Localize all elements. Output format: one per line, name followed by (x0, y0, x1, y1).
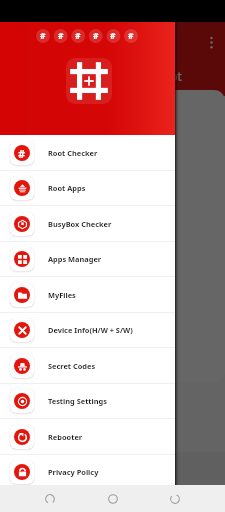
button[interactable]: More options (206, 33, 217, 44)
button[interactable]: Root Apps (0, 171, 175, 205)
staticText: # (18, 146, 26, 161)
button[interactable]: Privacy Policy (0, 455, 175, 489)
staticText: MyFiles (48, 290, 76, 300)
staticText: # (128, 30, 134, 42)
button[interactable]: Recents (163, 487, 187, 511)
staticText: Root Apps (48, 183, 86, 193)
staticText: Root Checker (48, 148, 98, 158)
button[interactable]: Testing Settings (0, 384, 175, 418)
staticText: # (40, 30, 46, 42)
staticText: Testing Settings (48, 396, 107, 406)
staticText: Device Info(H/W + S/W) (48, 325, 133, 335)
staticText: Secret Codes (48, 361, 96, 371)
staticText: # (110, 30, 116, 42)
button[interactable]: Back (38, 487, 62, 511)
staticText: Rebooter (48, 432, 83, 442)
staticText: # (58, 30, 64, 42)
button[interactable]: Rebooter (0, 419, 175, 454)
button[interactable]: MyFiles (0, 277, 175, 312)
button[interactable]: BusyBox Checker (0, 206, 175, 241)
staticText: # (75, 30, 81, 42)
button[interactable]: Home (101, 487, 125, 511)
staticText: Privacy Policy (48, 467, 99, 477)
button[interactable]: Device Info(H/W + S/W) (0, 313, 175, 347)
staticText: BusyBox Checker (48, 219, 112, 229)
button[interactable]: Apps Manager (0, 242, 175, 276)
button[interactable]: Secret Codes (0, 348, 175, 383)
button[interactable]: # (0, 135, 175, 170)
staticText: Apps Manager (48, 254, 102, 264)
staticText: # (93, 30, 99, 42)
staticText: Root (155, 68, 182, 84)
